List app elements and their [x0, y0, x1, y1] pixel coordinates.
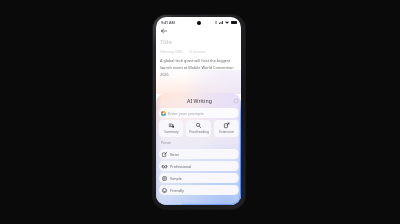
staticText: A global tech giant will host the bigges… — [160, 58, 237, 78]
staticText: Proofreading — [189, 130, 209, 134]
button[interactable]: Enter your prompts — [159, 108, 239, 118]
button[interactable]: Back — [160, 27, 168, 35]
button[interactable]: Proofreading — [186, 120, 211, 137]
staticText: Professional — [170, 164, 192, 169]
button[interactable]: Friendly — [159, 185, 239, 195]
staticText: Preset — [161, 140, 171, 144]
staticText: February 2026 · 12 minutes — [160, 49, 206, 53]
staticText: Strict — [170, 152, 179, 157]
staticText: Extension — [219, 130, 234, 134]
staticText: Title — [160, 38, 172, 46]
button[interactable]: Professional — [159, 161, 239, 171]
staticText: Enter your prompts — [168, 111, 204, 116]
staticText: Simple — [170, 176, 182, 181]
staticText: AI Writing — [187, 97, 212, 104]
staticText: 9:41 AM — [161, 20, 175, 25]
button[interactable]: Simple — [159, 173, 239, 183]
button[interactable]: Summary — [159, 120, 183, 137]
staticText: Friendly — [170, 188, 184, 193]
button[interactable]: More options — [233, 98, 239, 104]
button[interactable]: Extension — [214, 120, 239, 137]
staticText: Summary — [164, 130, 179, 134]
button[interactable]: Strict — [159, 149, 239, 159]
